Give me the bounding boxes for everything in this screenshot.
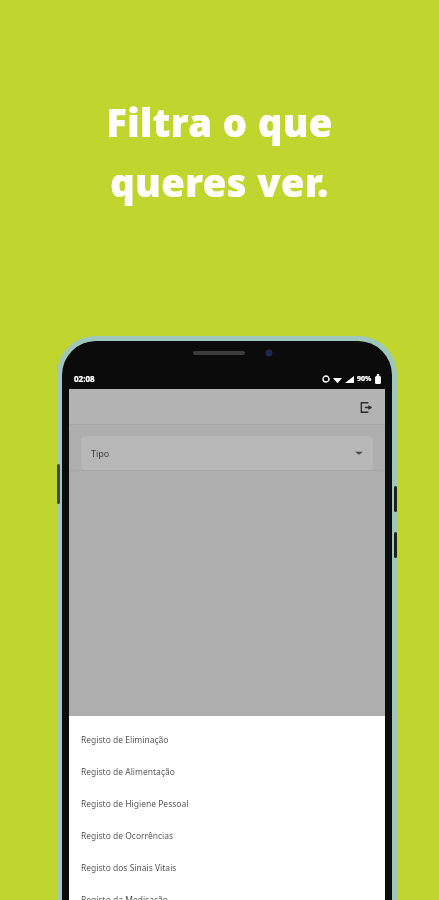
button[interactable]: Registo de Eliminação [69, 724, 385, 756]
staticText: Tipo [91, 447, 110, 459]
staticText: 02:08 [74, 373, 95, 384]
staticText: 90% [357, 374, 372, 384]
button[interactable]: Tipo [81, 436, 373, 470]
staticText: Registo de Ocorrências [81, 830, 174, 842]
staticText: queres ver. [110, 156, 329, 208]
button[interactable]: Registo de Higiene Pessoal [69, 788, 385, 820]
button[interactable]: Registo dos Sinais Vitais [69, 852, 385, 884]
button[interactable]: Registo de Ocorrências [69, 820, 385, 852]
button[interactable]: Registo de Alimentação [69, 756, 385, 788]
staticText: Registo de Alimentação [81, 766, 175, 778]
staticText: Filtra o que [106, 96, 333, 148]
staticText: Registo dos Sinais Vitais [81, 862, 177, 874]
button[interactable]: Registo da Medicação [69, 884, 385, 900]
staticText: Registo de Higiene Pessoal [81, 798, 189, 810]
staticText: Registo da Medicação [81, 894, 168, 900]
button[interactable]: Logout [353, 395, 377, 419]
staticText: Registo de Eliminação [81, 734, 169, 746]
